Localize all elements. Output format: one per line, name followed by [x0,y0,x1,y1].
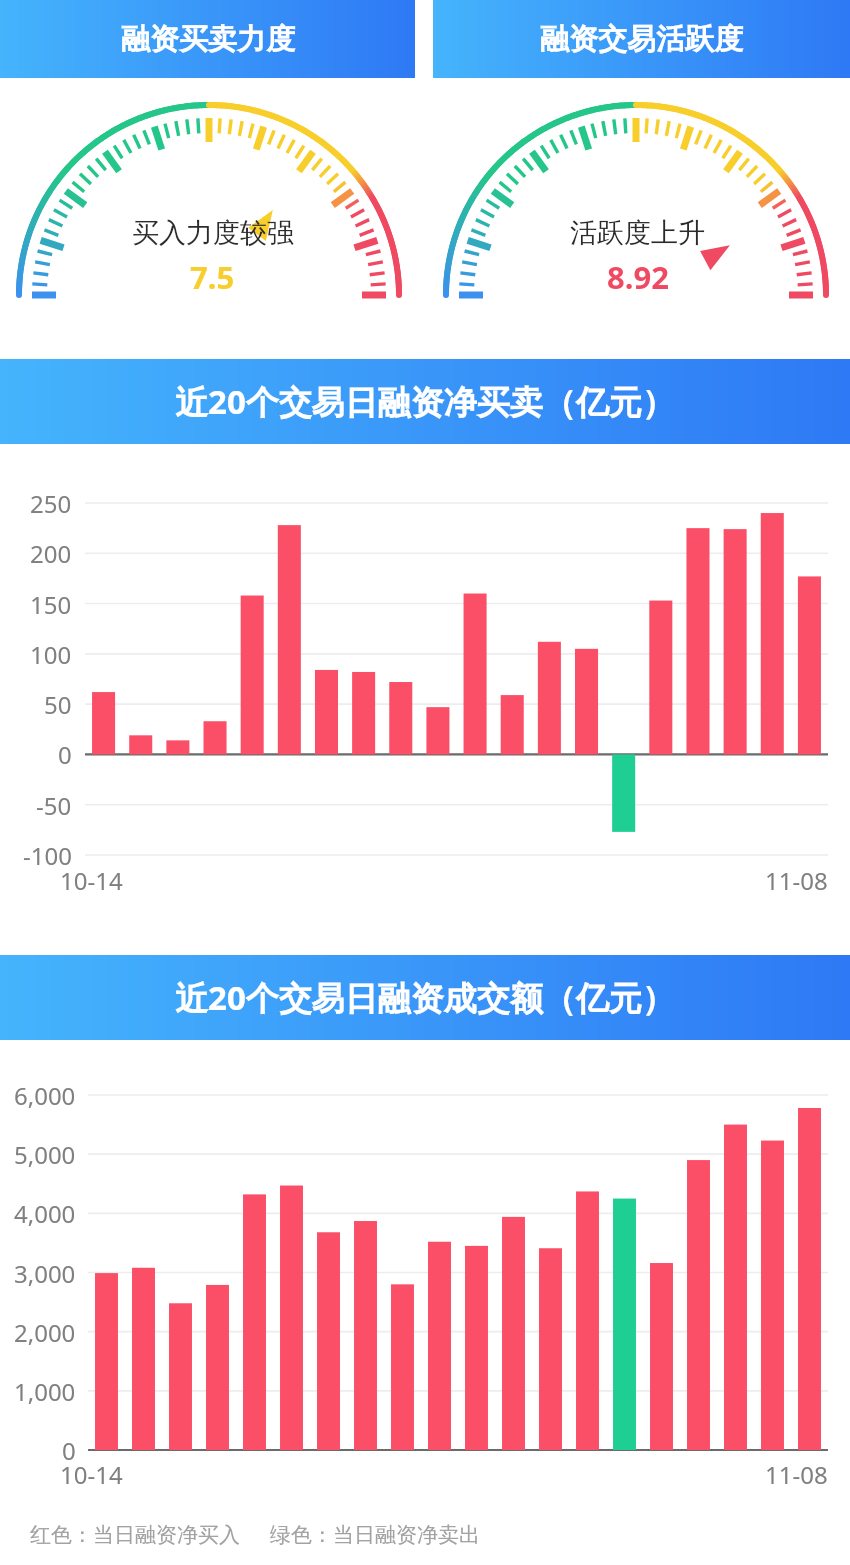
staticText: 0 [58,738,72,771]
staticText: 200 [30,537,72,570]
staticText: 活跃度上升 [570,216,705,250]
button[interactable]: 融资买卖力度 [0,0,415,78]
staticText: -50 [36,789,72,822]
button[interactable]: 近20个交易日融资净买卖（亿元） [0,359,850,444]
button[interactable]: 6,000 [0,1040,850,1505]
staticText: 买入力度较强 [132,216,294,250]
staticText: 250 [30,487,72,520]
staticText: 2,000 [14,1316,76,1349]
staticText: 绿色：当日融资净卖出 [270,1522,480,1548]
staticText: 近20个交易日融资成交额（亿元） [175,975,675,1020]
staticText: 11-08 [765,1458,828,1491]
button[interactable]: 融资交易活跃度仪表 [425,78,850,340]
staticText: 50 [44,688,72,721]
button[interactable]: 融资买卖力度仪表 [0,78,425,340]
staticText: 融资交易活跃度 [540,21,743,58]
staticText: 0 [62,1434,76,1467]
staticText: 3,000 [14,1257,76,1290]
staticText: 5,000 [14,1138,76,1171]
staticText: 10-14 [60,1458,123,1491]
staticText: 6,000 [14,1079,76,1112]
staticText: 1,000 [14,1375,76,1408]
button[interactable]: 250 [0,444,850,944]
button[interactable]: 近20个交易日融资成交额（亿元） [0,955,850,1040]
staticText: -100 [23,839,72,872]
staticText: 100 [30,638,72,671]
button[interactable]: 融资交易活跃度 [433,0,850,78]
staticText: 150 [30,588,72,621]
staticText: 10-14 [60,864,123,897]
staticText: 近20个交易日融资净买卖（亿元） [175,379,675,424]
staticText: 红色：当日融资净买入 [30,1522,240,1548]
staticText: 7.5 [190,256,235,298]
staticText: 8.92 [607,256,669,298]
staticText: 4,000 [14,1197,76,1230]
staticText: 融资买卖力度 [121,21,295,58]
staticText: 11-08 [765,864,828,897]
